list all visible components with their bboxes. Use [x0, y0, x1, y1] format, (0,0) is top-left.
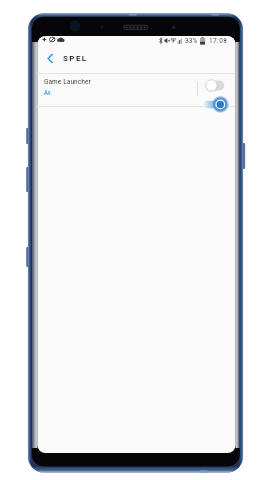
staticText: Av [44, 89, 51, 97]
button[interactable]: Game Launcher [37, 74, 235, 106]
staticText: SPEL [63, 54, 88, 63]
staticText: Game Launcher [44, 77, 91, 86]
button[interactable] [199, 96, 231, 114]
staticText: 33% [185, 36, 198, 45]
button[interactable] [40, 50, 60, 67]
button[interactable] [204, 79, 228, 93]
staticText: 17:08 [209, 36, 228, 45]
